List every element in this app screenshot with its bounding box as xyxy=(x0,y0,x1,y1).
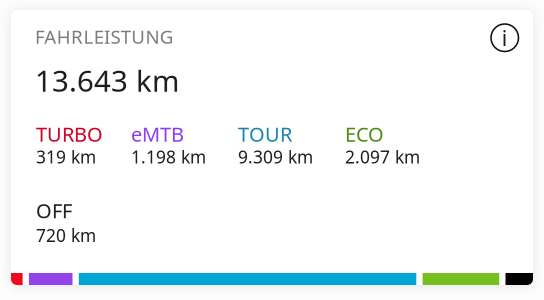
button[interactable]: Info xyxy=(491,24,518,51)
staticText: FAHRLEISTUNG xyxy=(35,24,174,49)
staticText: 319 km xyxy=(36,145,96,168)
staticText: TURBO xyxy=(36,121,103,147)
staticText: 1.198 km xyxy=(131,145,206,168)
staticText: ECO xyxy=(345,121,384,147)
staticText: OFF xyxy=(36,197,72,224)
staticText: 13.643 km xyxy=(35,61,179,100)
staticText: 720 km xyxy=(36,224,96,247)
staticText: i xyxy=(502,24,508,52)
staticText: eMTB xyxy=(131,121,184,147)
staticText: TOUR xyxy=(238,121,292,147)
staticText: 9.309 km xyxy=(238,145,313,168)
staticText: 2.097 km xyxy=(345,145,420,168)
